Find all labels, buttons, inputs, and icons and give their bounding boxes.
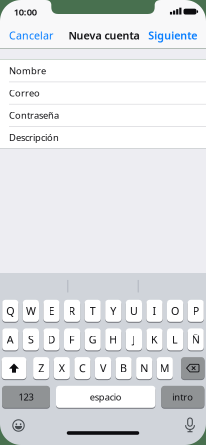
button[interactable]: L [167, 328, 183, 351]
staticText: Y [110, 304, 116, 318]
button[interactable]: J [126, 328, 142, 351]
staticText: D [47, 332, 55, 346]
staticText: A [7, 332, 14, 346]
button[interactable]: Z [33, 357, 49, 380]
button[interactable]: Delete [181, 357, 205, 380]
button[interactable]: Contraseña [0, 104, 206, 126]
button[interactable]: 123 [2, 385, 50, 408]
button[interactable]: Nombre [0, 59, 206, 82]
button[interactable]: Y [105, 299, 121, 322]
staticText: Nombre [9, 64, 46, 77]
button[interactable]: G [85, 328, 101, 351]
button[interactable]: Emoji [10, 417, 26, 433]
staticText: 123 [18, 391, 33, 403]
button[interactable]: Siguiente [148, 28, 197, 42]
button[interactable]: P [188, 299, 204, 322]
button[interactable]: S [23, 328, 39, 351]
staticText: P [193, 304, 199, 318]
staticText: T [90, 304, 96, 318]
staticText: E [48, 304, 54, 318]
staticText: C [79, 361, 86, 375]
staticText: I [152, 304, 156, 318]
staticText: Nueva cuenta [68, 28, 139, 42]
button[interactable]: R [64, 299, 80, 322]
button[interactable]: C [74, 357, 90, 380]
button[interactable]: V [95, 357, 111, 380]
staticText: H [109, 332, 117, 346]
button[interactable]: D [43, 328, 60, 351]
staticText: J [132, 332, 135, 346]
button[interactable]: Dictation [182, 417, 198, 433]
staticText: Contraseña [9, 109, 59, 121]
staticText: Cancelar [9, 28, 53, 42]
button[interactable]: M [157, 357, 173, 380]
staticText: O [171, 304, 179, 318]
staticText: Correo [9, 87, 40, 99]
staticText: Siguiente [148, 28, 197, 42]
button[interactable]: intro [161, 385, 204, 408]
staticText: B [120, 361, 127, 375]
button[interactable]: W [23, 299, 39, 322]
staticText: Z [38, 361, 44, 375]
button[interactable]: F [64, 328, 80, 351]
staticText: W [26, 304, 36, 318]
staticText: M [160, 361, 170, 375]
staticText: 10:00 [14, 6, 37, 18]
button[interactable]: O [167, 299, 183, 322]
staticText: N [140, 361, 148, 375]
button[interactable]: Shift [2, 357, 26, 380]
staticText: G [89, 332, 97, 346]
staticText: Q [6, 304, 14, 318]
button[interactable]: E [43, 299, 60, 322]
staticText: V [100, 361, 106, 375]
button[interactable]: H [105, 328, 121, 351]
button[interactable]: X [54, 357, 70, 380]
staticText: Descripción [9, 131, 59, 144]
button[interactable]: Correo [0, 82, 206, 104]
button[interactable]: Q [2, 299, 18, 322]
staticText: espacio [90, 391, 122, 403]
button[interactable]: I [146, 299, 163, 322]
staticText: intro [172, 391, 193, 403]
staticText: R [69, 304, 76, 318]
staticText: S [28, 332, 34, 346]
button[interactable]: Cancelar [9, 28, 53, 42]
staticText: F [69, 332, 75, 346]
staticText: L [172, 332, 178, 346]
button[interactable]: espacio [56, 385, 155, 408]
button[interactable]: T [85, 299, 101, 322]
staticText: X [59, 361, 65, 375]
button[interactable]: B [115, 357, 132, 380]
button[interactable]: K [146, 328, 163, 351]
button[interactable]: Ñ [188, 328, 204, 351]
button[interactable]: A [2, 328, 18, 351]
button[interactable]: Descripción [0, 126, 206, 149]
button[interactable]: N [136, 357, 152, 380]
staticText: Ñ [192, 332, 200, 346]
staticText: U [130, 304, 138, 318]
staticText: K [151, 332, 158, 346]
button[interactable]: U [126, 299, 142, 322]
